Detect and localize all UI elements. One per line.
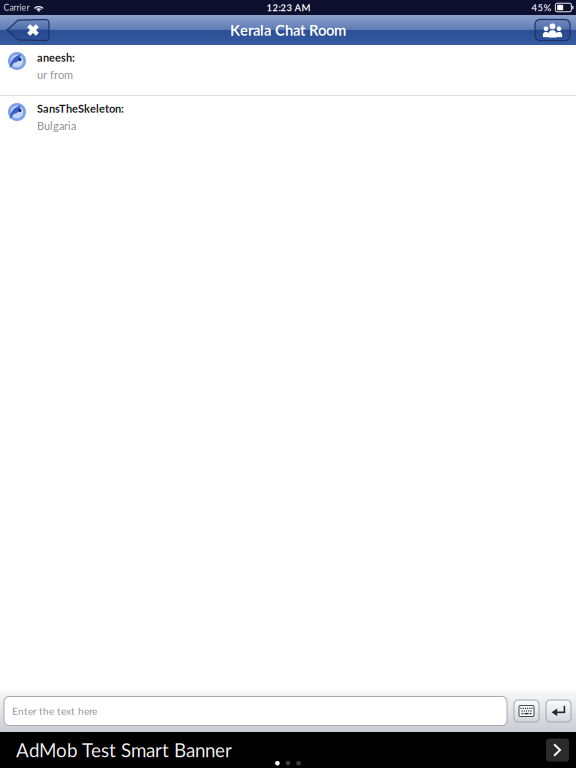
staticText: Kerala Chat Room [230, 21, 346, 39]
button[interactable]: Members [535, 19, 570, 40]
staticText: ur from [37, 68, 73, 81]
button[interactable]: Close [7, 19, 49, 40]
staticText: 12:23 AM [266, 2, 310, 13]
staticText: Bulgaria [37, 119, 76, 132]
staticText: 45% [531, 2, 551, 13]
staticText: Enter the text here [12, 705, 97, 717]
staticText: SansTheSkeleton: [37, 102, 124, 115]
button[interactable]: More information [546, 738, 569, 761]
staticText: AdMob Test Smart Banner [16, 739, 232, 761]
button[interactable]: Keyboard [514, 700, 539, 722]
staticText: Carrier [3, 2, 29, 13]
button[interactable]: Send [546, 700, 571, 722]
staticText: aneesh: [37, 51, 75, 64]
